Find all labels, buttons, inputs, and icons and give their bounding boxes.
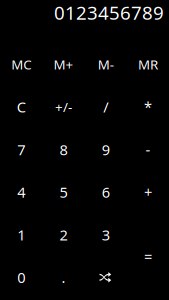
staticText: + — [144, 182, 152, 202]
button[interactable]: 5 — [42, 171, 84, 213]
button[interactable]: +/- — [42, 86, 84, 128]
staticText: 4 — [17, 182, 25, 202]
staticText: 7 — [17, 140, 25, 159]
button[interactable]: 9 — [84, 128, 127, 171]
button[interactable]: MR — [127, 43, 169, 86]
staticText: = — [144, 246, 152, 266]
staticText: . — [61, 268, 65, 287]
staticText: / — [103, 97, 108, 117]
button[interactable]: 0 — [0, 256, 42, 299]
button[interactable]: = — [127, 213, 169, 299]
staticText: 5 — [59, 182, 67, 202]
button[interactable]: * — [127, 86, 169, 128]
button[interactable]: C — [0, 86, 42, 128]
staticText: +/- — [55, 98, 72, 116]
staticText: MR — [138, 55, 158, 73]
staticText: MC — [11, 55, 31, 73]
staticText: 6 — [102, 182, 110, 202]
staticText: 9 — [102, 140, 110, 159]
staticText: C — [17, 97, 26, 117]
staticText: 0 — [17, 268, 25, 287]
button[interactable]: 1 — [0, 213, 42, 256]
button[interactable]: MC — [0, 43, 42, 86]
button[interactable]: 8 — [42, 128, 84, 171]
staticText: M+ — [53, 55, 73, 73]
staticText: M- — [98, 55, 114, 73]
button[interactable]: 4 — [0, 171, 42, 213]
staticText: 1 — [17, 225, 25, 244]
staticText: - — [145, 140, 150, 159]
button[interactable]: - — [127, 128, 169, 171]
button[interactable]: 6 — [84, 171, 127, 213]
button[interactable]: . — [42, 256, 84, 299]
button[interactable]: Shuffle — [84, 256, 127, 299]
button[interactable]: 7 — [0, 128, 42, 171]
staticText: 3 — [102, 225, 110, 244]
staticText: 0123456789 — [54, 0, 164, 25]
button[interactable]: M- — [84, 43, 127, 86]
button[interactable]: / — [84, 86, 127, 128]
staticText: 8 — [59, 140, 67, 159]
button[interactable]: 2 — [42, 213, 84, 256]
staticText: * — [144, 97, 152, 117]
button[interactable]: M+ — [42, 43, 84, 86]
staticText: 2 — [59, 225, 67, 244]
button[interactable]: 3 — [84, 213, 127, 256]
button[interactable]: + — [127, 171, 169, 213]
